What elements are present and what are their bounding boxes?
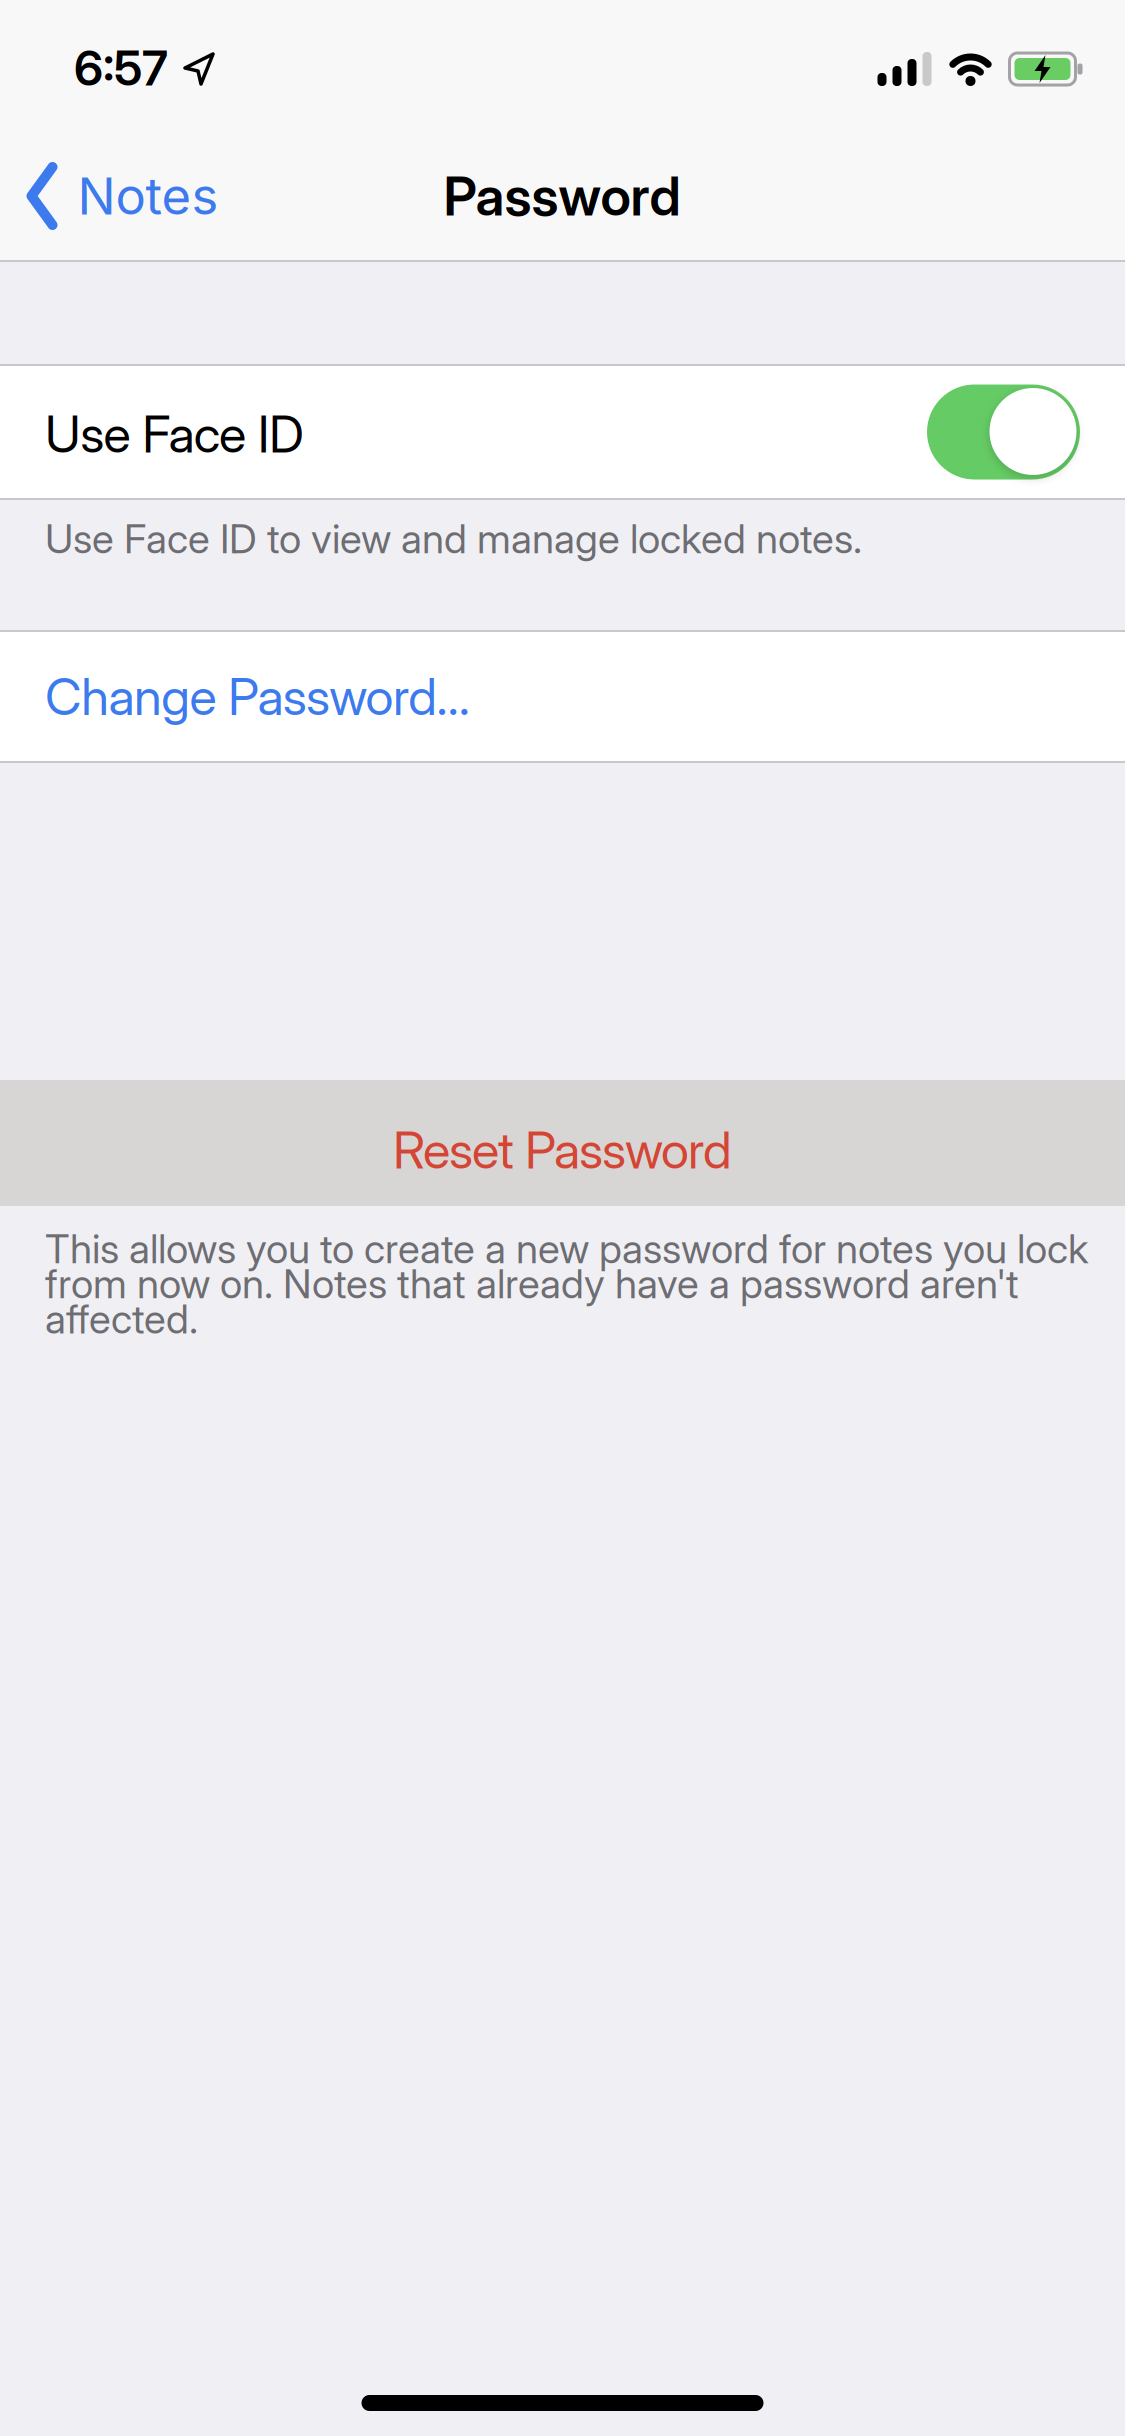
staticText: Use Face ID to view and manage locked no… bbox=[45, 515, 862, 562]
button[interactable]: Use Face ID bbox=[0, 366, 1125, 498]
staticText: 6:57 bbox=[74, 39, 168, 97]
staticText: Notes bbox=[77, 166, 218, 226]
staticText: This allows you to create a new password… bbox=[45, 1225, 1088, 1343]
button[interactable]: Back to Notes bbox=[25, 162, 218, 230]
staticText: Use Face ID bbox=[45, 403, 304, 465]
button[interactable]: Reset Password bbox=[0, 1080, 1125, 1206]
staticText: Reset Password bbox=[393, 1119, 732, 1181]
staticText: Password bbox=[443, 164, 680, 228]
staticText: Change Password… bbox=[45, 666, 469, 727]
button[interactable]: Change Password… bbox=[0, 632, 1125, 761]
